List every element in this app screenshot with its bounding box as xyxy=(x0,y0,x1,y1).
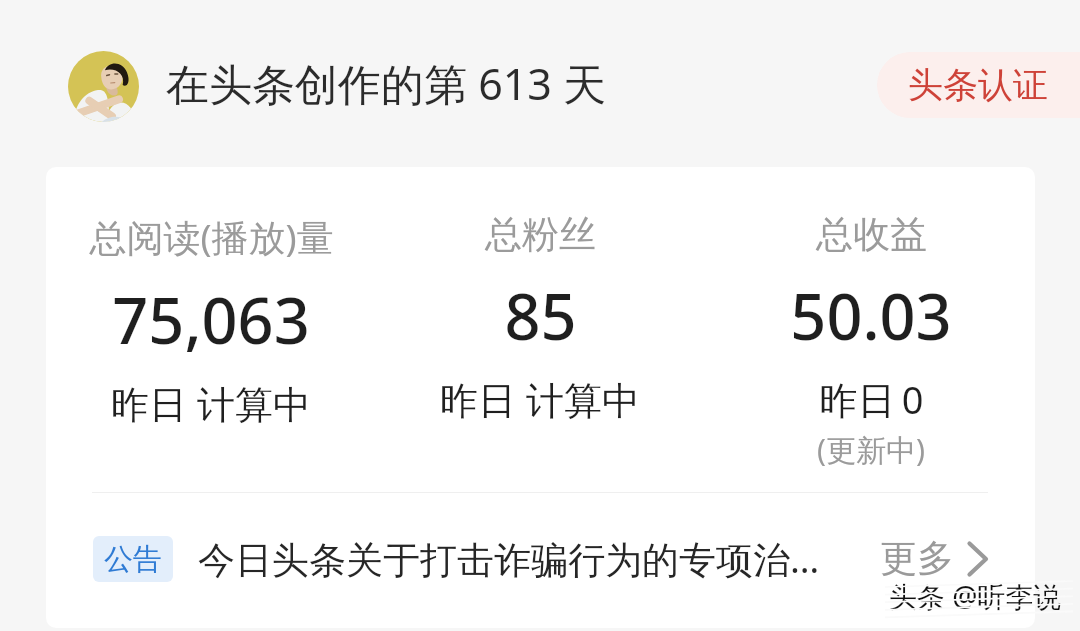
staticText: 75,063 xyxy=(112,277,310,363)
staticText: 总收益 xyxy=(816,211,927,258)
staticText: 头条认证 xyxy=(908,63,1048,107)
staticText: 更多 xyxy=(880,535,954,582)
staticText: 昨日 计算中 xyxy=(111,377,311,429)
staticText: 50.03 xyxy=(790,273,952,359)
staticText: 在头条创作的第 613 天 xyxy=(166,54,607,113)
staticText: 昨日 计算中 xyxy=(440,373,640,425)
staticText: 昨日 0 xyxy=(819,373,924,425)
other: More announcements xyxy=(968,542,988,576)
button[interactable]: 总粉丝 xyxy=(360,211,720,425)
staticText: 今日头条关于打击诈骗行为的专项治… xyxy=(198,533,820,584)
staticText: 公告 xyxy=(104,541,162,578)
staticText: 头条 @听李说 xyxy=(889,577,1062,615)
staticText: (更新中) xyxy=(817,429,925,470)
button[interactable]: Profile avatar xyxy=(68,51,139,122)
button[interactable]: 更多 xyxy=(880,516,988,601)
staticText: 总粉丝 xyxy=(485,211,596,258)
staticText: 总阅读(播放)量 xyxy=(89,211,334,262)
button[interactable]: 总收益 xyxy=(691,211,1035,470)
staticText: 85 xyxy=(504,273,577,359)
button[interactable]: 头条认证 xyxy=(877,52,1080,118)
button[interactable]: 在头条创作的第 613 天 xyxy=(166,25,607,115)
button[interactable]: 总阅读(播放)量 xyxy=(46,211,391,429)
button[interactable]: 公告 xyxy=(46,516,1035,601)
